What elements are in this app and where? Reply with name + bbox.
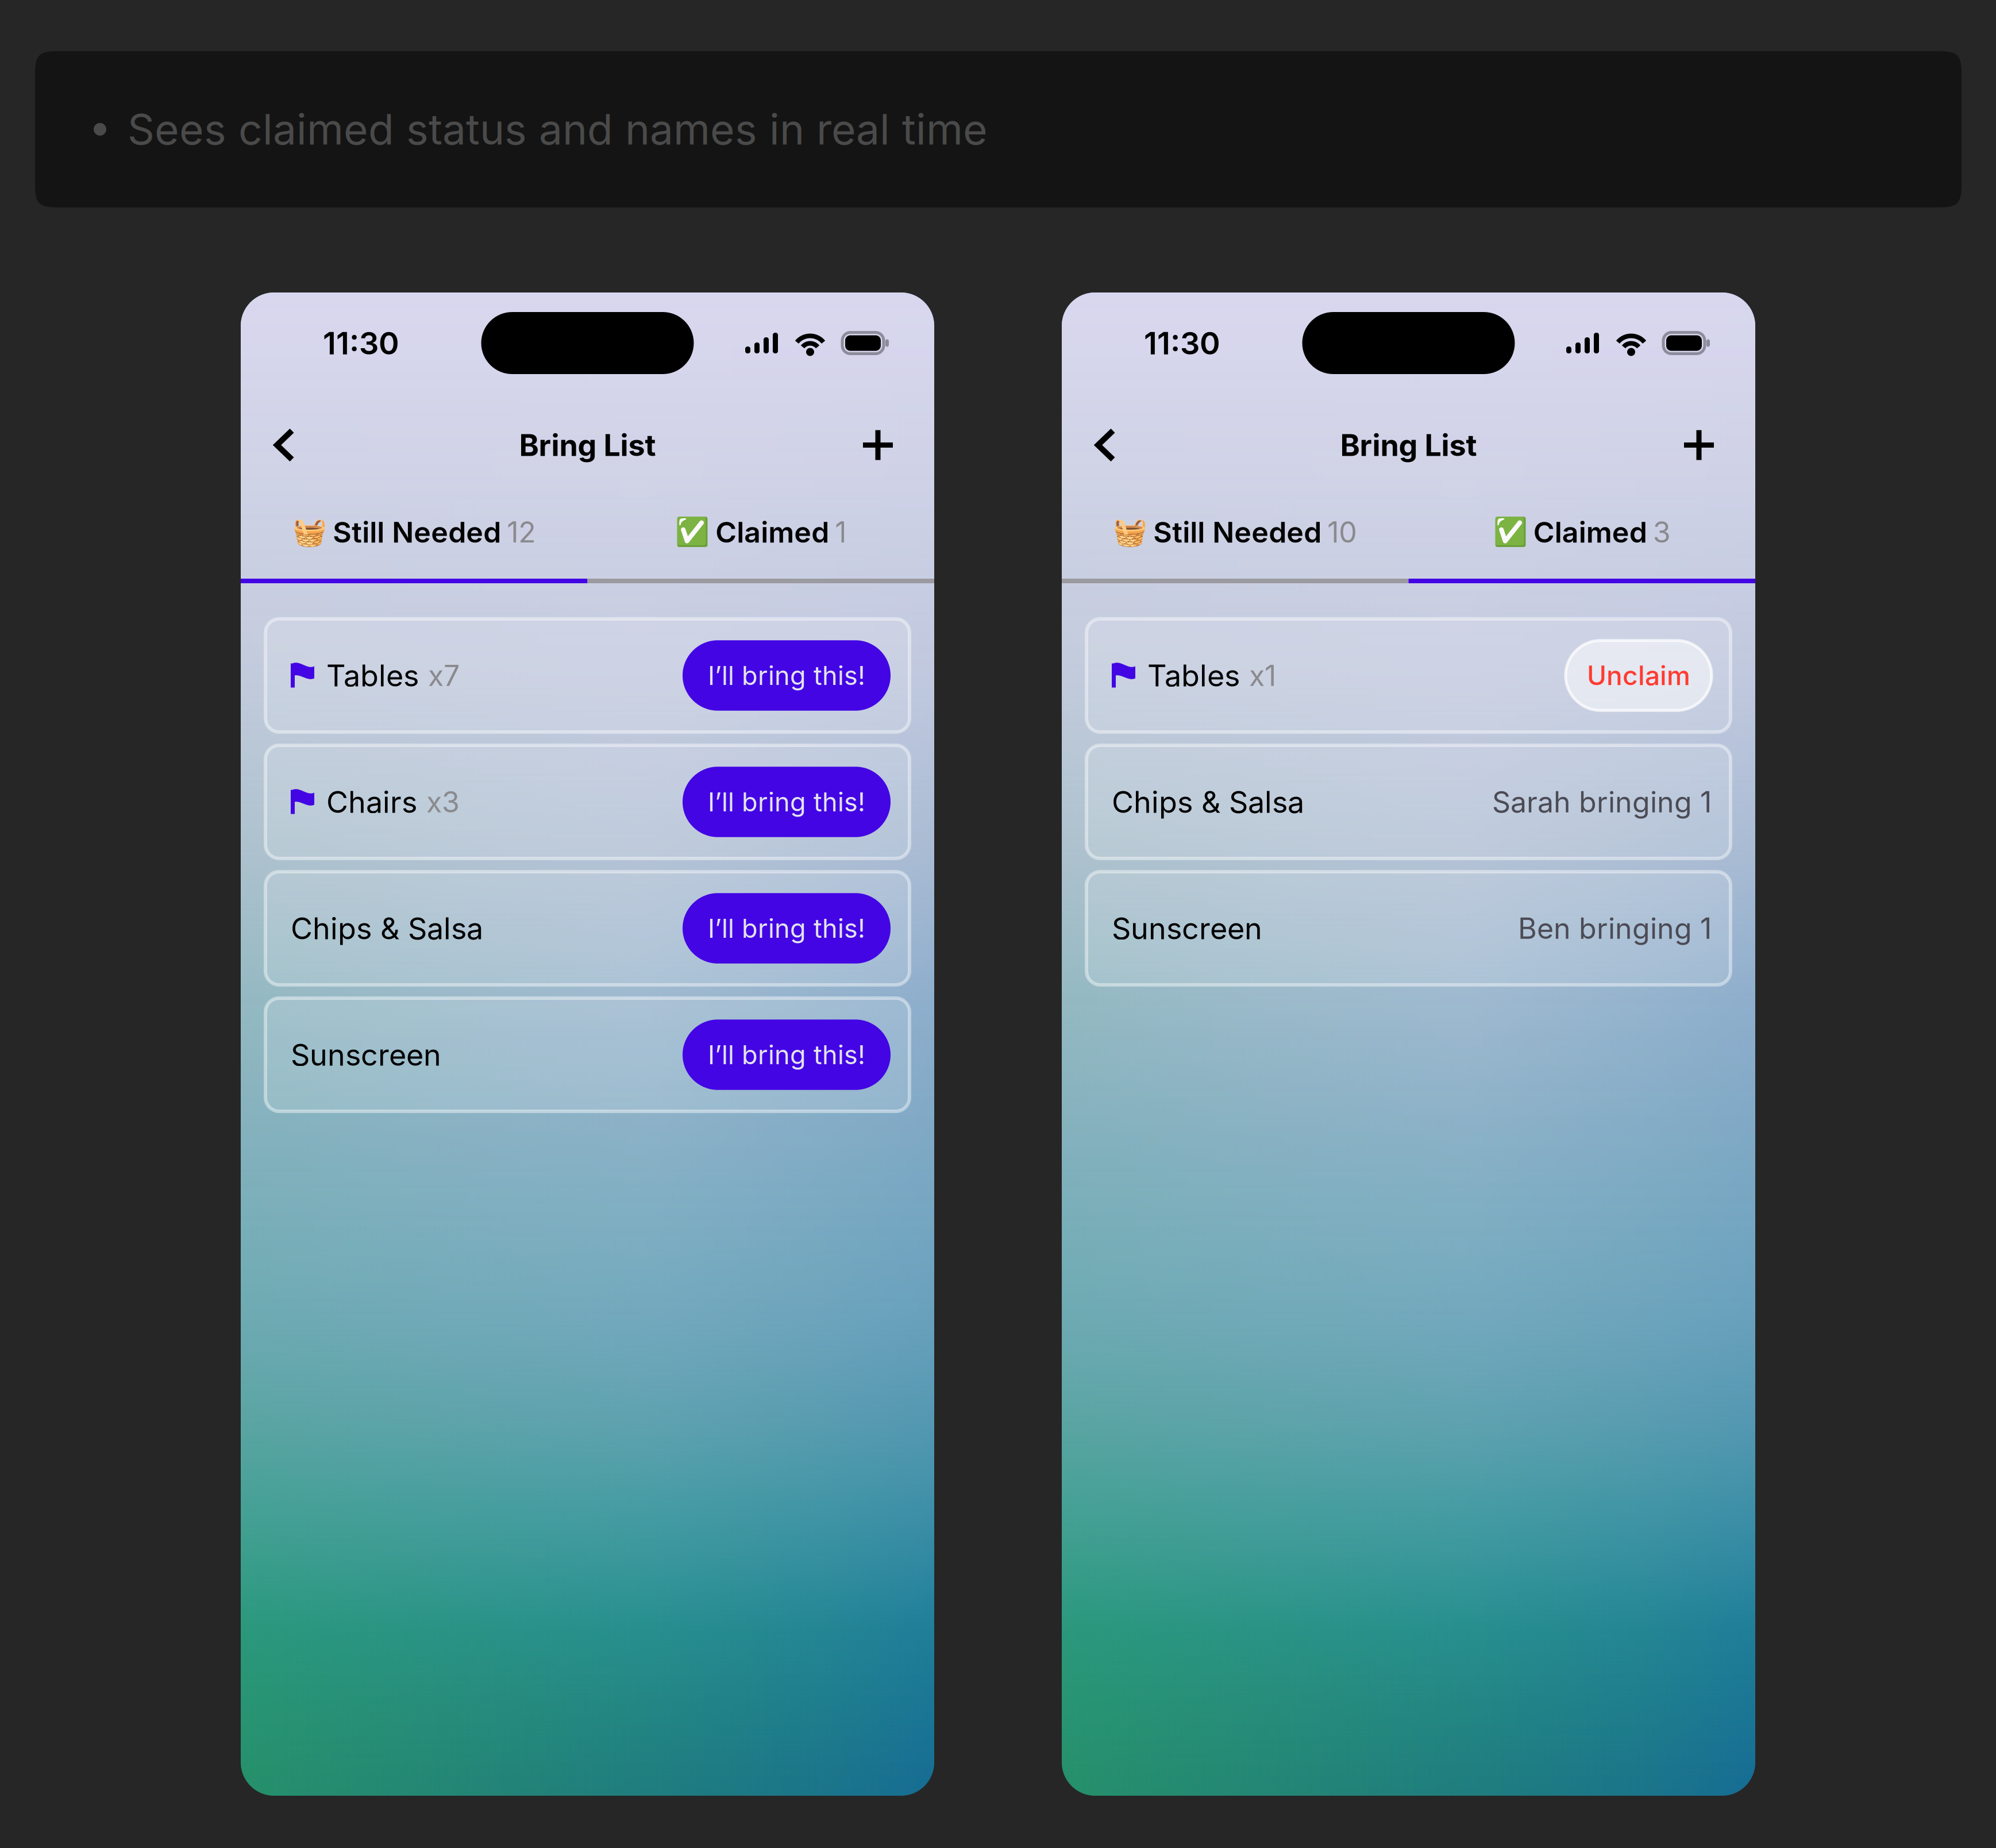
staticText: Still Needed xyxy=(333,515,501,550)
button[interactable]: 🧺 xyxy=(1062,490,1409,574)
staticText: Sarah bringing 1 xyxy=(1492,785,1712,819)
staticText: Tables xyxy=(326,657,419,694)
staticText: Bring List xyxy=(519,427,656,463)
button[interactable]: I’ll bring this! xyxy=(683,767,891,837)
staticText: Claimed xyxy=(1533,515,1647,550)
staticText: ✅ xyxy=(675,516,710,548)
staticText: x1 xyxy=(1249,658,1276,693)
staticText: 11:30 xyxy=(323,324,399,362)
staticText: 1 xyxy=(835,515,846,550)
staticText: x3 xyxy=(426,785,460,819)
button[interactable]: Back xyxy=(1080,413,1131,477)
button[interactable]: ✅ xyxy=(587,490,934,574)
staticText: 🧺 xyxy=(293,516,327,548)
button[interactable]: Add item xyxy=(1667,413,1731,477)
staticText: Ben bringing 1 xyxy=(1518,911,1712,946)
staticText: Unclaim xyxy=(1587,659,1690,692)
staticText: I’ll bring this! xyxy=(708,913,865,944)
staticText: Claimed xyxy=(715,515,829,550)
button[interactable]: 🧺 xyxy=(241,490,587,574)
staticText: Chips & Salsa xyxy=(291,910,483,946)
staticText: Sees claimed status and names in real ti… xyxy=(128,104,988,155)
button[interactable]: Unclaim xyxy=(1566,641,1712,710)
button[interactable]: I’ll bring this! xyxy=(683,893,891,963)
staticText: Sunscreen xyxy=(1112,910,1262,946)
button[interactable]: I’ll bring this! xyxy=(683,640,891,711)
staticText: 10 xyxy=(1327,515,1357,550)
button[interactable]: Back xyxy=(259,413,310,477)
staticText: I’ll bring this! xyxy=(708,1039,865,1070)
staticText: Chips & Salsa xyxy=(1112,784,1304,820)
staticText: I’ll bring this! xyxy=(708,660,865,691)
button[interactable]: Add item xyxy=(846,413,910,477)
staticText: ✅ xyxy=(1493,516,1528,548)
staticText: 11:30 xyxy=(1144,324,1220,362)
staticText: Bring List xyxy=(1340,427,1477,463)
staticText: 3 xyxy=(1653,515,1671,550)
staticText: Tables xyxy=(1147,657,1240,694)
button[interactable]: I’ll bring this! xyxy=(683,1020,891,1090)
button[interactable]: ✅ xyxy=(1409,490,1755,574)
staticText: I’ll bring this! xyxy=(708,786,865,818)
staticText: Still Needed xyxy=(1153,515,1322,550)
staticText: Chairs xyxy=(326,784,417,820)
staticText: x7 xyxy=(428,658,460,693)
staticText: 🧺 xyxy=(1113,516,1147,548)
staticText: Sunscreen xyxy=(291,1037,441,1073)
staticText: 12 xyxy=(507,515,536,550)
